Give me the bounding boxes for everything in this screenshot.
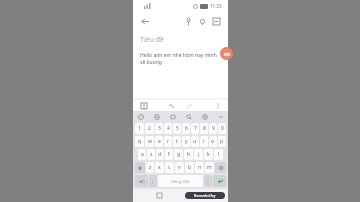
staticText: 3	[158, 125, 161, 132]
staticText: d	[158, 151, 162, 158]
button[interactable]: 3	[155, 123, 163, 134]
staticText: Tiêu đề	[140, 35, 165, 45]
button[interactable]: 0	[218, 123, 226, 134]
staticText: s	[150, 151, 153, 158]
button[interactable]: j	[194, 149, 203, 160]
button[interactable]: 5	[173, 123, 181, 134]
button[interactable]: Redo	[184, 100, 195, 111]
button[interactable]: e	[155, 136, 163, 147]
button[interactable]: n	[195, 162, 204, 173]
button[interactable]: 9	[209, 123, 217, 134]
staticText: b	[188, 164, 192, 171]
button[interactable]: Send	[209, 14, 223, 28]
staticText: Recorded by	[194, 193, 216, 198]
button[interactable]: k	[204, 149, 213, 160]
staticText: l	[218, 151, 220, 158]
button[interactable]: t	[173, 136, 181, 147]
staticText: 4	[167, 125, 170, 132]
staticText: 7	[194, 125, 197, 132]
button[interactable]: Back	[138, 14, 152, 28]
button[interactable]: f	[165, 149, 173, 160]
button[interactable]: Symbols	[135, 175, 148, 187]
button[interactable]: Undo	[165, 100, 176, 111]
button[interactable]: s	[147, 149, 155, 160]
button[interactable]: Enter	[213, 175, 226, 187]
staticText: f	[168, 151, 170, 158]
button[interactable]: z	[146, 162, 154, 173]
staticText: Tiếng Việt	[171, 179, 190, 184]
button[interactable]: x	[155, 162, 164, 173]
button[interactable]: Recents	[157, 193, 162, 198]
staticText: v	[178, 164, 181, 171]
button[interactable]: Stickers	[168, 112, 177, 121]
button[interactable]: r	[164, 136, 172, 147]
button[interactable]: Format	[138, 100, 149, 111]
button[interactable]: v	[175, 162, 184, 173]
button[interactable]: o	[209, 136, 217, 147]
staticText: w	[148, 138, 152, 145]
button[interactable]: Attach file	[181, 14, 195, 28]
button[interactable]: Backspace	[215, 162, 226, 173]
button[interactable]: m	[205, 162, 214, 173]
staticText: k	[207, 151, 210, 158]
button[interactable]: Period	[204, 175, 212, 187]
staticText: u	[193, 138, 197, 145]
staticText: .	[207, 178, 209, 184]
staticText: 2	[148, 125, 151, 132]
button[interactable]: 4	[164, 123, 172, 134]
button[interactable]: 7	[191, 123, 199, 134]
staticText: c	[168, 164, 171, 171]
button[interactable]: Hello anh em nhé hôm nay mình sẽ buong	[140, 52, 221, 66]
staticText: r	[167, 138, 170, 145]
button[interactable]: Shift	[135, 162, 145, 173]
staticText: o	[211, 138, 215, 145]
staticText: h	[187, 151, 191, 158]
button[interactable]: g	[174, 149, 183, 160]
button[interactable]: w	[145, 136, 154, 147]
button[interactable]: Expand	[216, 112, 225, 121]
button[interactable]: Settings	[200, 112, 209, 121]
staticText: i	[203, 138, 205, 145]
button[interactable]: Tiêu đề	[140, 35, 221, 45]
button[interactable]: 6	[182, 123, 190, 134]
staticText: p	[220, 138, 224, 145]
button[interactable]: 2	[145, 123, 154, 134]
button[interactable]: l	[214, 149, 223, 160]
staticText: !#1	[139, 179, 145, 184]
button[interactable]: Comma	[149, 175, 157, 187]
staticText: x	[158, 164, 161, 171]
staticText: ,	[152, 178, 154, 184]
button[interactable]: Floating bubble	[220, 47, 233, 60]
button[interactable]: Insert link	[195, 14, 209, 28]
button[interactable]: h	[184, 149, 193, 160]
button[interactable]: i	[200, 136, 208, 147]
staticText: 0	[221, 125, 224, 132]
button[interactable]: b	[185, 162, 194, 173]
button[interactable]: Emoji	[136, 112, 145, 121]
staticText: t	[176, 138, 178, 145]
button[interactable]: a	[138, 149, 146, 160]
button[interactable]: c	[165, 162, 174, 173]
staticText: y	[185, 138, 188, 145]
button[interactable]: q	[135, 136, 144, 147]
staticText: z	[149, 164, 152, 171]
staticText: 1	[138, 125, 141, 132]
staticText: j	[198, 151, 200, 158]
button[interactable]: 8	[200, 123, 208, 134]
staticText: n	[198, 164, 202, 171]
staticText: 5	[176, 125, 179, 132]
button[interactable]: Clipboard	[152, 112, 161, 121]
button[interactable]: More options	[212, 100, 223, 111]
staticText: m	[207, 164, 212, 171]
staticText: e	[158, 138, 161, 145]
button[interactable]: u	[191, 136, 199, 147]
staticText: m	[224, 50, 230, 58]
button[interactable]: 1	[135, 123, 144, 134]
button[interactable]: Search	[184, 112, 193, 121]
button[interactable]: p	[218, 136, 226, 147]
staticText: 6	[185, 125, 188, 132]
button[interactable]: d	[156, 149, 164, 160]
staticText: Hello anh em nhé hôm nay mình sẽ buong	[140, 52, 221, 66]
button[interactable]: Tiếng Việt	[158, 175, 203, 187]
button[interactable]: y	[182, 136, 190, 147]
